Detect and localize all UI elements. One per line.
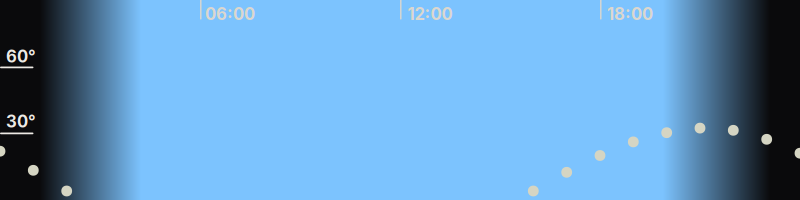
staticText: 30° (6, 111, 36, 132)
staticText: 18:00 (607, 4, 653, 24)
staticText: 12:00 (407, 4, 452, 24)
staticText: 60° (6, 46, 36, 66)
staticText: 06:00 (205, 4, 255, 24)
